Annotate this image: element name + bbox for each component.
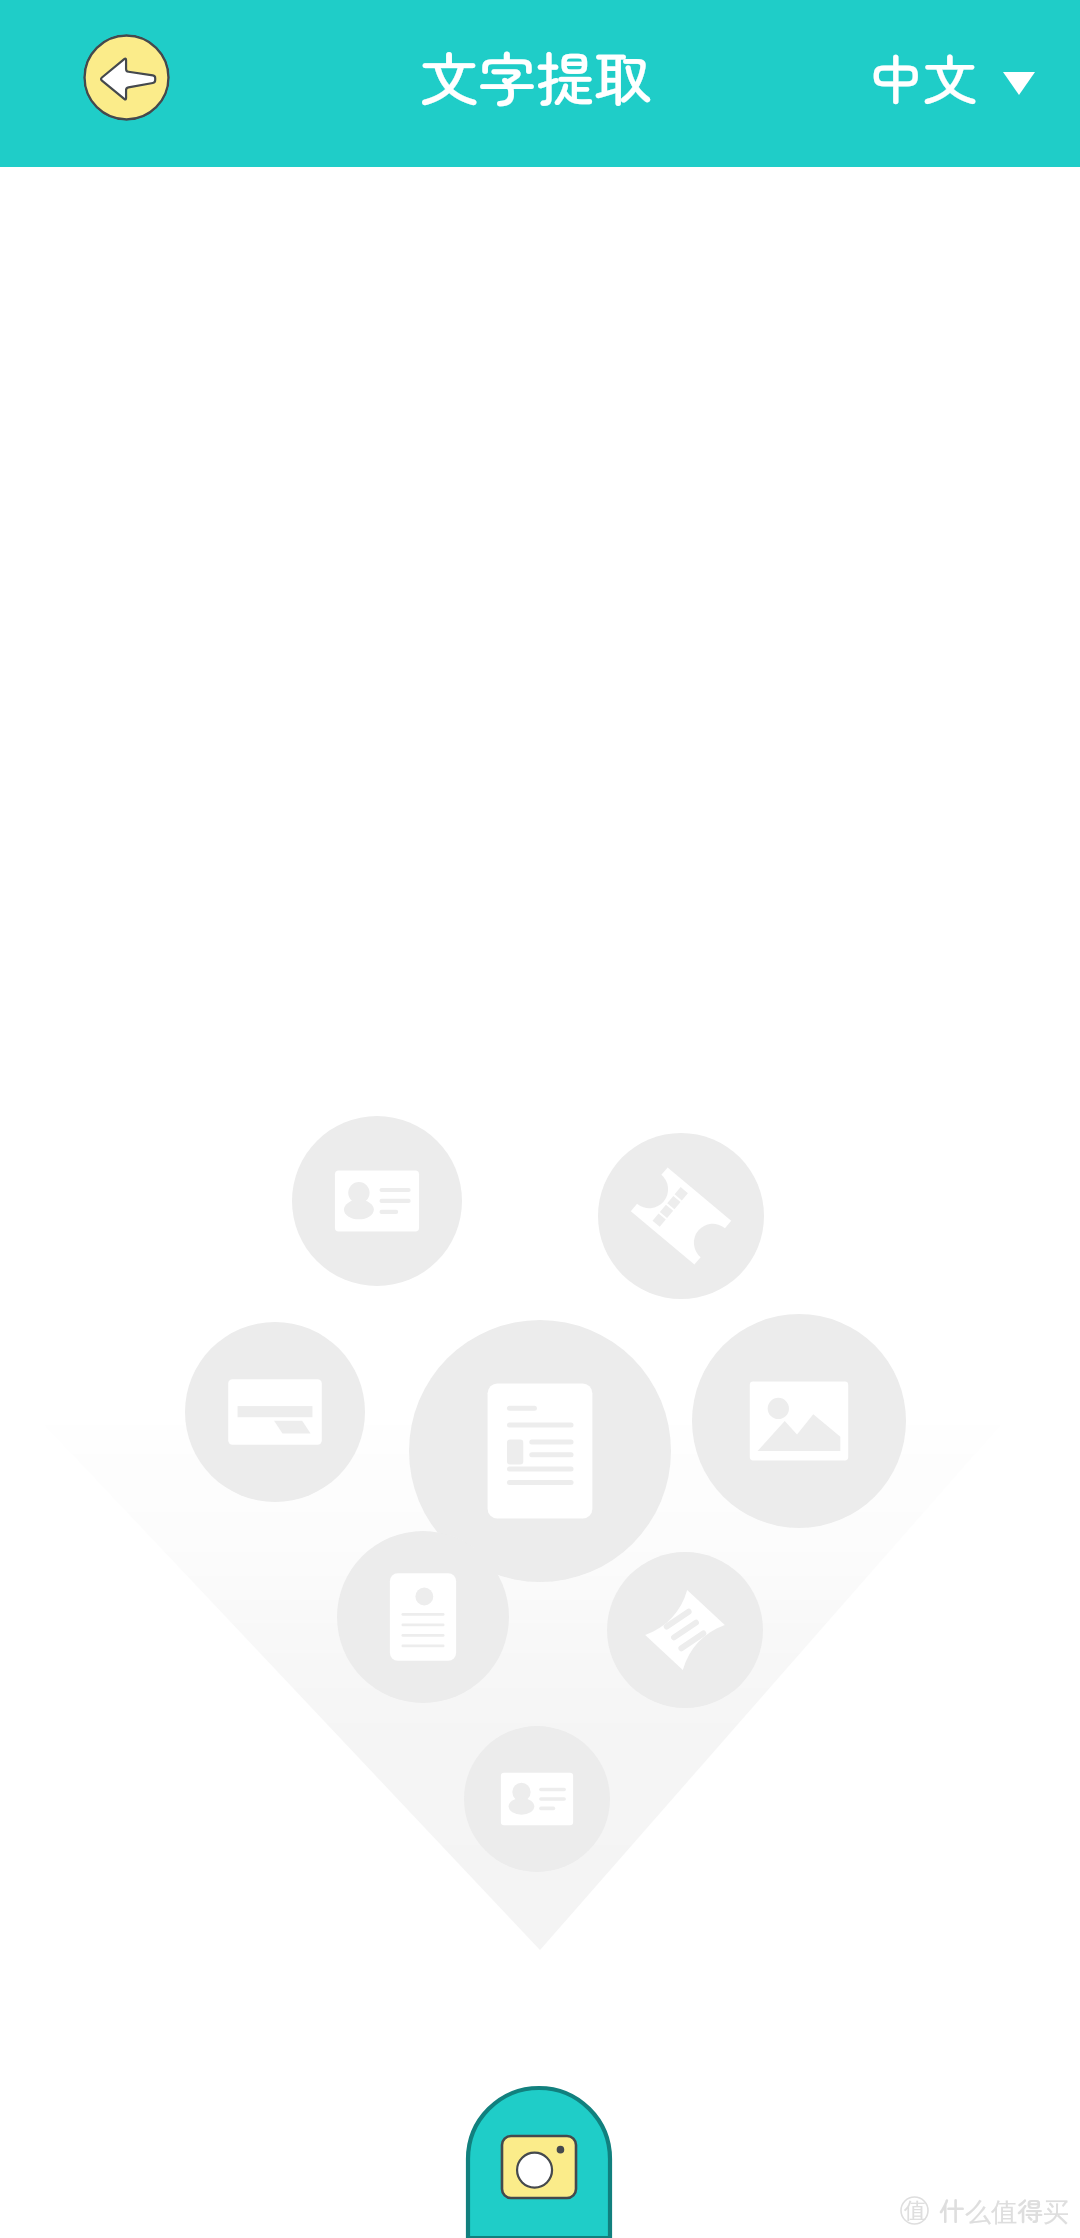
button[interactable]: 中文 bbox=[869, 37, 1035, 115]
staticText: 文字提取 bbox=[420, 34, 653, 118]
staticText: 值 bbox=[904, 2197, 926, 2225]
staticText: 中文 bbox=[869, 37, 977, 115]
button[interactable]: Back bbox=[83, 34, 170, 121]
button[interactable]: Camera bbox=[468, 2088, 610, 2238]
staticText: 什么值得买 bbox=[939, 2191, 1070, 2229]
